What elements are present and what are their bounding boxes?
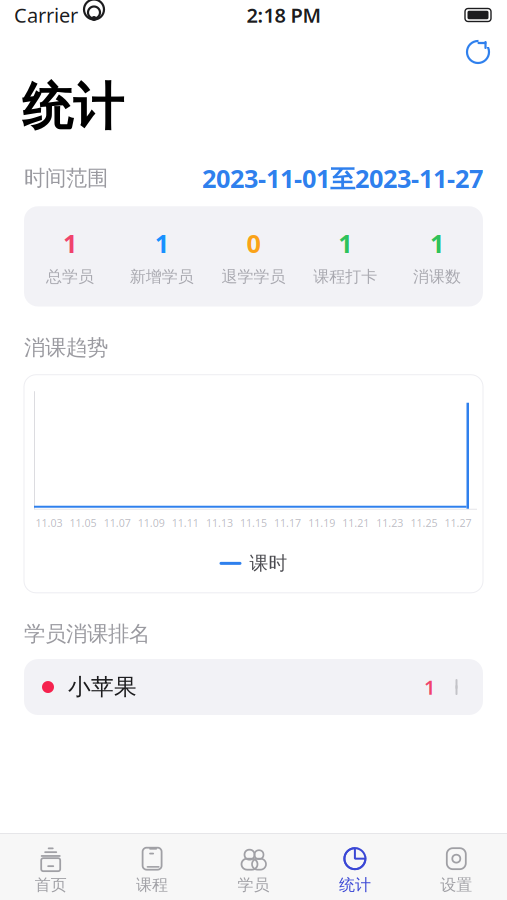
staticText: 新增学员: [130, 267, 194, 287]
staticText: 1: [155, 226, 169, 260]
button[interactable]: 时间范围: [0, 156, 507, 200]
button[interactable]: 统计: [304, 834, 406, 900]
staticText: 2023-11-01至2023-11-27: [202, 161, 483, 195]
staticText: 2:18 PM: [246, 2, 321, 28]
staticText: 总学员: [46, 267, 94, 287]
button[interactable]: 设置: [406, 834, 507, 900]
button[interactable]: 刷新: [463, 37, 507, 67]
staticText: 消课趋势: [24, 334, 108, 361]
staticText: 消课数: [413, 267, 461, 287]
button[interactable]: 小苹果: [24, 659, 483, 715]
staticText: 11.15: [240, 516, 267, 530]
staticText: 11.17: [274, 516, 301, 530]
staticText: 课程打卡: [313, 267, 377, 287]
staticText: Carrier: [14, 2, 78, 28]
staticText: 11.09: [138, 516, 165, 530]
staticText: 11.27: [444, 516, 471, 530]
staticText: 1: [338, 226, 352, 260]
staticText: 学员: [237, 875, 269, 895]
staticText: 统计: [22, 76, 124, 138]
staticText: 设置: [440, 875, 472, 895]
staticText: 课程: [136, 875, 168, 895]
staticText: 1: [63, 226, 77, 260]
staticText: 课时: [249, 552, 287, 575]
staticText: 0: [246, 226, 260, 260]
staticText: 学员消课排名: [24, 621, 150, 647]
staticText: 小苹果: [68, 673, 137, 701]
staticText: 11.25: [410, 516, 437, 530]
staticText: 1: [430, 226, 444, 260]
button[interactable]: 学员: [203, 834, 304, 900]
staticText: 1: [424, 674, 435, 700]
staticText: 11.23: [376, 516, 403, 530]
button[interactable]: 首页: [0, 834, 101, 900]
button[interactable]: 课程: [101, 834, 203, 900]
staticText: 首页: [35, 875, 67, 895]
staticText: 时间范围: [24, 165, 108, 191]
staticText: 统计: [339, 875, 371, 895]
staticText: 11.13: [206, 516, 233, 530]
staticText: 11.11: [172, 516, 199, 530]
staticText: 11.05: [70, 516, 97, 530]
staticText: 11.19: [308, 516, 335, 530]
staticText: 退学学员: [221, 267, 285, 287]
staticText: 11.03: [35, 516, 62, 530]
staticText: 11.07: [104, 516, 131, 530]
staticText: 11.21: [342, 516, 369, 530]
